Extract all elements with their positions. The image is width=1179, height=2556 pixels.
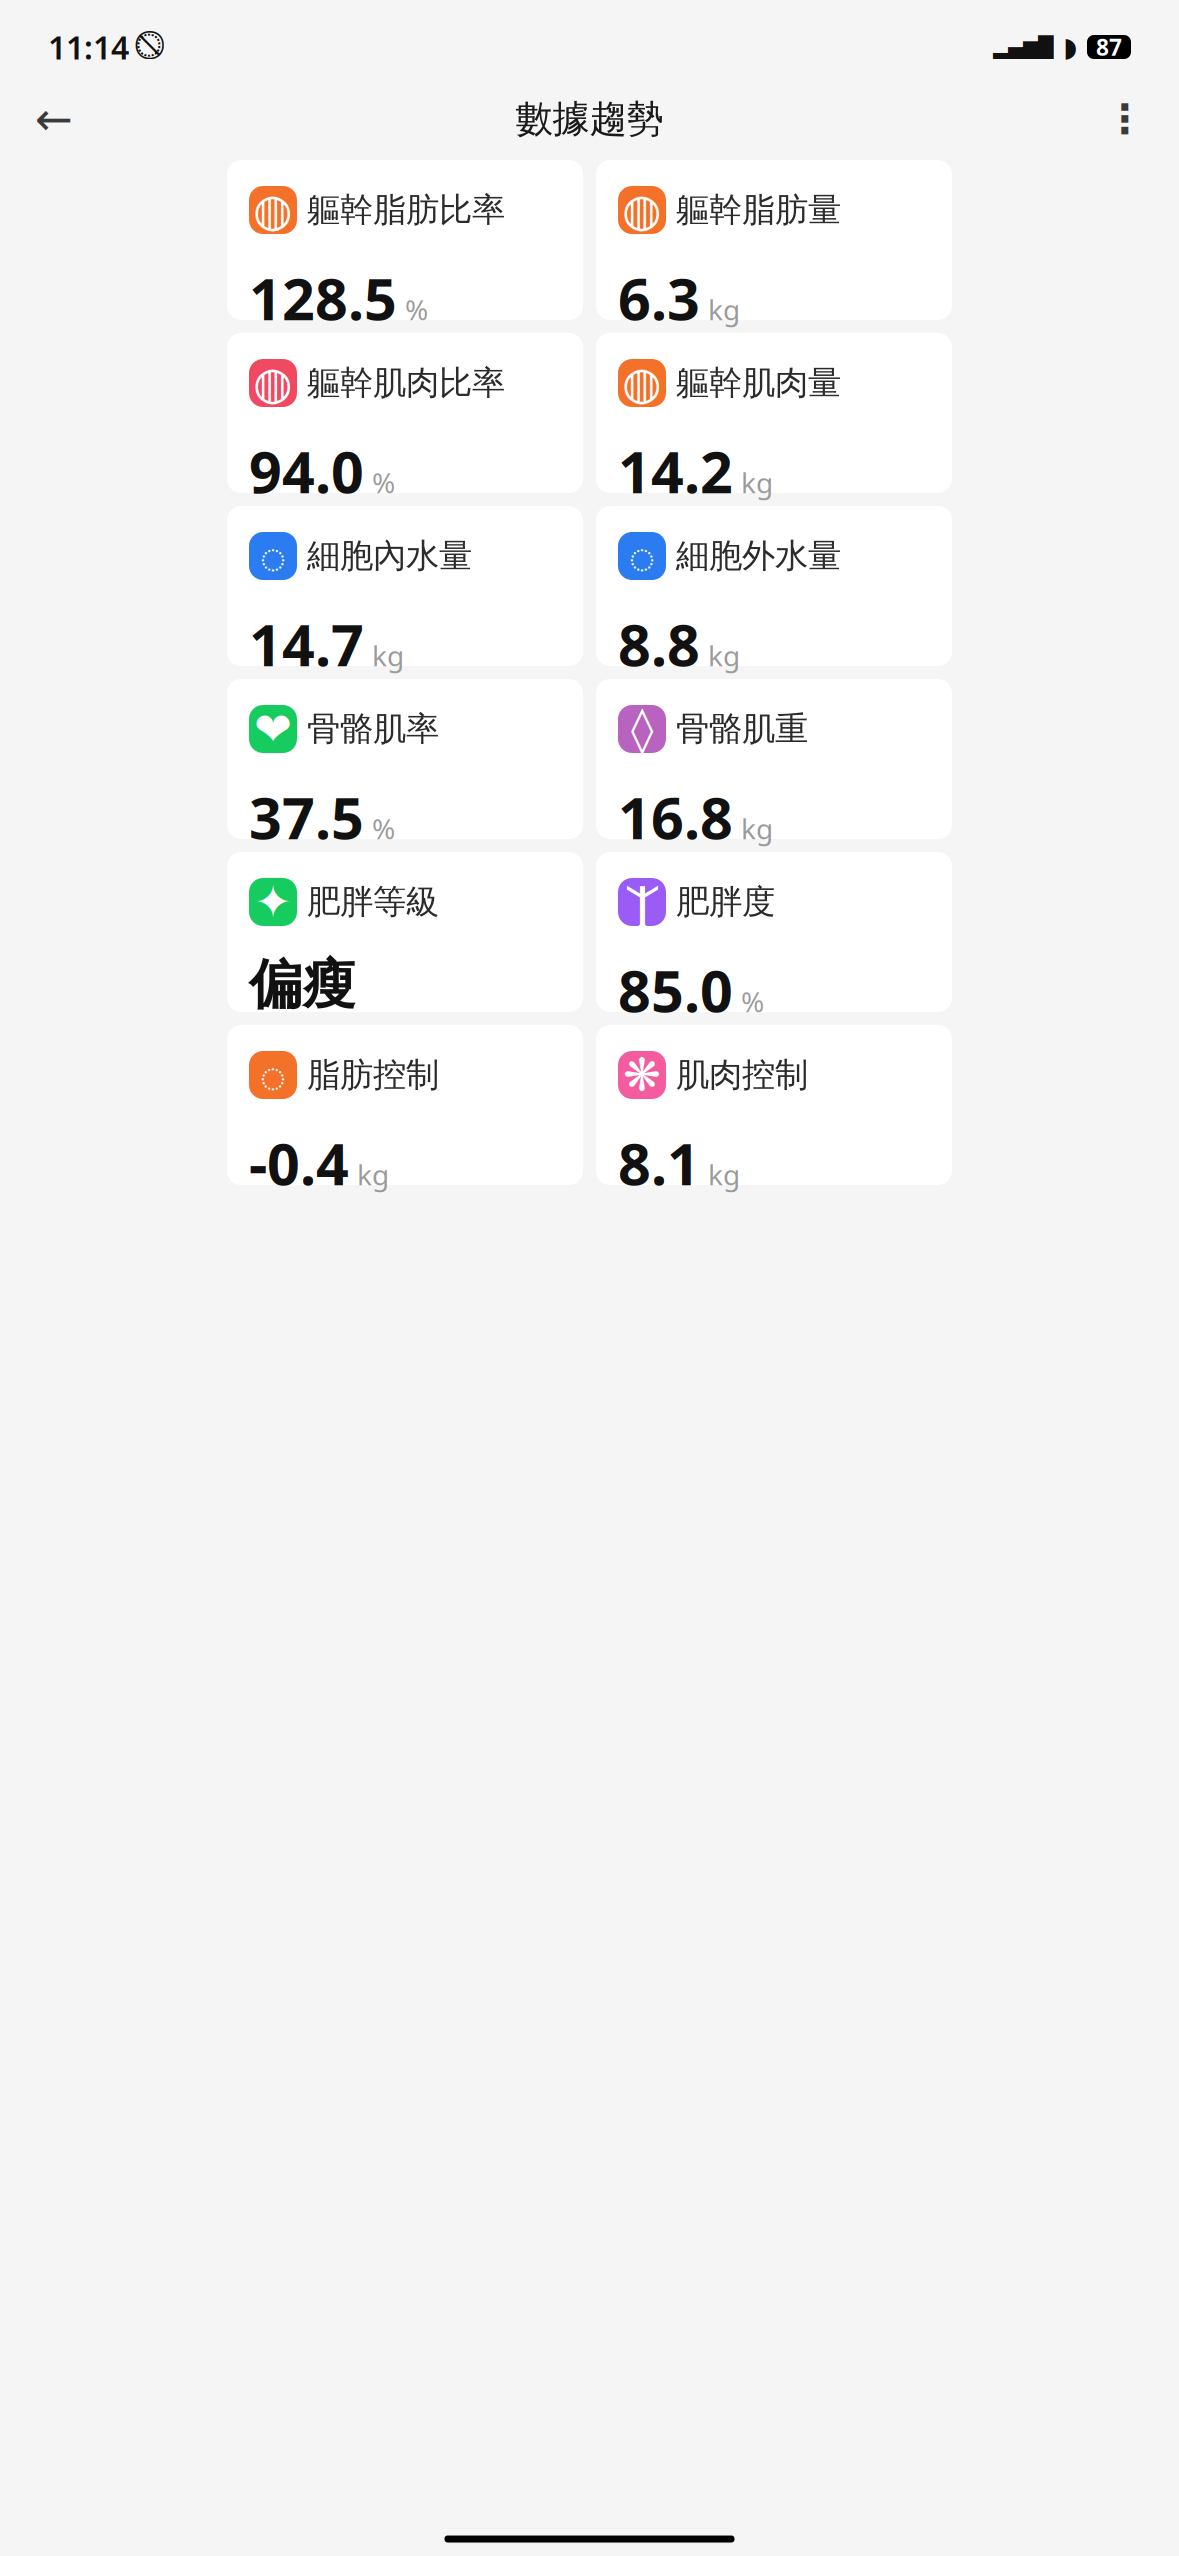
staticText: ◌ xyxy=(259,1045,286,1105)
staticText: ◍ xyxy=(253,357,293,409)
staticText: 8.8 xyxy=(618,606,700,682)
staticText: kg xyxy=(708,1156,740,1193)
button[interactable]: ◍ xyxy=(596,333,952,493)
button[interactable]: ◍ xyxy=(227,160,583,320)
staticText: kg xyxy=(708,291,740,328)
staticText: 骨骼肌重 xyxy=(676,708,808,749)
button[interactable]: ◌ xyxy=(227,506,583,666)
staticText: ▂▄▆█ xyxy=(993,36,1053,58)
staticText: -0.4 xyxy=(249,1125,349,1201)
staticText: 37.5 xyxy=(249,779,364,855)
button[interactable]: ◍ xyxy=(227,333,583,493)
button[interactable]: ❤ xyxy=(227,679,583,839)
staticText: 11:14 xyxy=(48,26,129,68)
staticText: % xyxy=(741,983,764,1020)
staticText: 87 xyxy=(1096,32,1122,62)
button[interactable]: 更多選項 xyxy=(1097,91,1153,147)
staticText: % xyxy=(372,810,395,847)
staticText: 128.5 xyxy=(249,260,397,336)
staticText: 不足 xyxy=(618,877,676,913)
staticText: 6.3 xyxy=(618,260,700,336)
button[interactable]: ᛉ xyxy=(596,852,952,1012)
staticText: ⃠ xyxy=(137,33,161,61)
staticText: 細胞內水量 xyxy=(307,535,472,576)
staticText: 偏瘦 xyxy=(249,952,355,1017)
staticText: ◍ xyxy=(622,184,662,236)
staticText: 脂肪控制 xyxy=(307,1054,439,1095)
button[interactable]: ◊ xyxy=(596,679,952,839)
staticText: ✦ xyxy=(254,876,292,928)
staticText: 94.0 xyxy=(249,433,364,509)
staticText: ◌ xyxy=(259,526,286,586)
staticText: 8.1 xyxy=(618,1125,700,1201)
staticText: ᛉ xyxy=(626,873,658,930)
staticText: 骨骼肌率 xyxy=(307,708,439,749)
staticText: 數據趨勢 xyxy=(515,96,663,142)
button[interactable]: ◍ xyxy=(596,160,952,320)
staticText: 軀幹脂肪比率 xyxy=(307,189,505,230)
button[interactable]: 返回 xyxy=(26,91,82,147)
button[interactable]: ◌ xyxy=(596,506,952,666)
staticText: % xyxy=(405,291,428,328)
staticText: 軀幹肌肉量 xyxy=(676,362,841,403)
staticText: ⋮ xyxy=(1105,96,1145,142)
staticText: ◌ xyxy=(628,526,655,586)
staticText: kg xyxy=(708,637,740,674)
staticText: 軀幹肌肉比率 xyxy=(307,362,505,403)
staticText: ❋ xyxy=(623,1049,661,1101)
staticText: 軀幹脂肪量 xyxy=(676,189,841,230)
staticText: ◗ xyxy=(1063,32,1077,62)
staticText: 偏低 xyxy=(249,877,307,913)
staticText: 低 xyxy=(618,704,647,740)
button[interactable]: ❋ xyxy=(596,1025,952,1185)
staticText: kg xyxy=(741,810,773,847)
staticText: % xyxy=(372,464,395,501)
staticText: ❤ xyxy=(254,703,292,755)
staticText: kg xyxy=(372,637,404,674)
staticText: 肌肉控制 xyxy=(676,1054,808,1095)
staticText: 細胞外水量 xyxy=(676,535,841,576)
staticText: 肥胖等級 xyxy=(307,881,439,922)
button[interactable]: ◌ xyxy=(227,1025,583,1185)
staticText: ◊ xyxy=(631,703,653,755)
staticText: 肥胖度 xyxy=(676,881,775,922)
staticText: 低 xyxy=(249,704,278,740)
staticText: kg xyxy=(357,1156,389,1193)
staticText: kg xyxy=(741,464,773,501)
staticText: 14.7 xyxy=(249,606,364,682)
staticText: 14.2 xyxy=(618,433,733,509)
staticText: ← xyxy=(35,93,73,145)
staticText: 低 xyxy=(618,1050,647,1086)
button[interactable]: ✦ xyxy=(227,852,583,1012)
staticText: 85.0 xyxy=(618,952,733,1028)
staticText: ◍ xyxy=(622,357,662,409)
staticText: ◍ xyxy=(253,184,293,236)
staticText: 16.8 xyxy=(618,779,733,855)
